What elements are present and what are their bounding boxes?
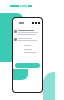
- button[interactable]: [14, 30, 41, 35]
- button[interactable]: [14, 38, 41, 41]
- button[interactable]: [15, 63, 40, 68]
